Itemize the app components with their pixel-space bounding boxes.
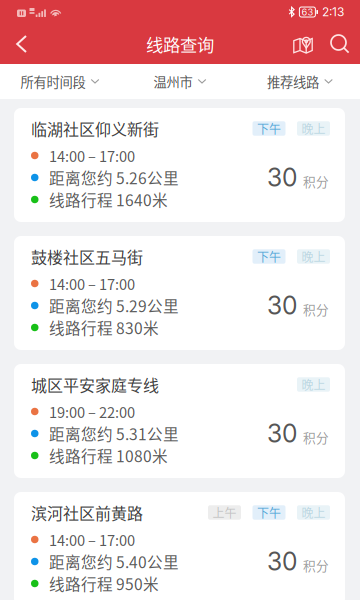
- staticText: 距离您约 5.29公里: [49, 294, 179, 317]
- staticText: 2:13: [322, 5, 344, 19]
- staticText: 所有时间段: [20, 72, 85, 91]
- staticText: 距离您约 5.26公里: [49, 166, 179, 189]
- button[interactable]: 临湖社区仰义新街: [14, 108, 345, 222]
- button[interactable]: 晚上: [297, 121, 330, 136]
- button[interactable]: 推荐线路: [240, 64, 360, 99]
- button[interactable]: 鼓楼社区五马街: [14, 236, 345, 350]
- staticText: 下午: [257, 504, 281, 521]
- staticText: 线路查询: [146, 31, 214, 57]
- staticText: 14:00 – 17:00: [49, 529, 135, 550]
- staticText: 临湖社区仰义新街: [31, 117, 159, 140]
- button[interactable]: 晚上: [297, 249, 330, 264]
- button[interactable]: 晚上: [297, 377, 330, 392]
- button[interactable]: 下午: [252, 505, 285, 520]
- staticText: 城区平安家庭专线: [31, 373, 159, 396]
- staticText: 晚上: [301, 376, 325, 393]
- staticText: 距离您约 5.40公里: [49, 550, 179, 573]
- staticText: 下午: [257, 248, 281, 265]
- staticText: 线路行程 1080米: [49, 444, 168, 467]
- staticText: 下午: [257, 120, 281, 137]
- button[interactable]: Back: [0, 24, 43, 64]
- staticText: 14:00 – 17:00: [49, 145, 135, 166]
- staticText: 积分: [303, 172, 329, 190]
- staticText: 30: [267, 547, 297, 576]
- staticText: 线路行程 830米: [49, 316, 159, 339]
- button[interactable]: 滨河社区前黄路: [14, 492, 345, 600]
- staticText: 19:00 – 22:00: [49, 401, 135, 422]
- staticText: 推荐线路: [267, 72, 319, 91]
- button[interactable]: Search: [322, 24, 358, 64]
- button[interactable]: 晚上: [297, 505, 330, 520]
- staticText: 积分: [303, 556, 329, 574]
- button[interactable]: 下午: [252, 249, 285, 264]
- staticText: 晚上: [301, 504, 325, 521]
- staticText: 线路行程 1640米: [49, 188, 168, 211]
- staticText: 线路行程 950米: [49, 572, 159, 595]
- button[interactable]: Map: [284, 24, 322, 64]
- staticText: 30: [267, 419, 297, 448]
- staticText: 距离您约 5.31公里: [49, 422, 179, 445]
- staticText: 晚上: [301, 248, 325, 265]
- staticText: 14:00 – 17:00: [49, 273, 135, 294]
- button[interactable]: 上午: [208, 505, 241, 520]
- button[interactable]: 下午: [252, 121, 285, 136]
- staticText: 上午: [212, 504, 236, 521]
- button[interactable]: 所有时间段: [0, 64, 120, 99]
- staticText: 温州市: [153, 72, 192, 91]
- button[interactable]: 城区平安家庭专线: [14, 364, 345, 478]
- staticText: 鼓楼社区五马街: [31, 245, 143, 268]
- staticText: 积分: [303, 300, 329, 318]
- staticText: 30: [267, 163, 297, 192]
- staticText: 晚上: [301, 120, 325, 137]
- button[interactable]: 温州市: [120, 64, 240, 99]
- staticText: 63: [301, 6, 313, 18]
- staticText: 30: [267, 291, 297, 320]
- staticText: 滨河社区前黄路: [31, 501, 143, 524]
- staticText: 积分: [303, 428, 329, 446]
